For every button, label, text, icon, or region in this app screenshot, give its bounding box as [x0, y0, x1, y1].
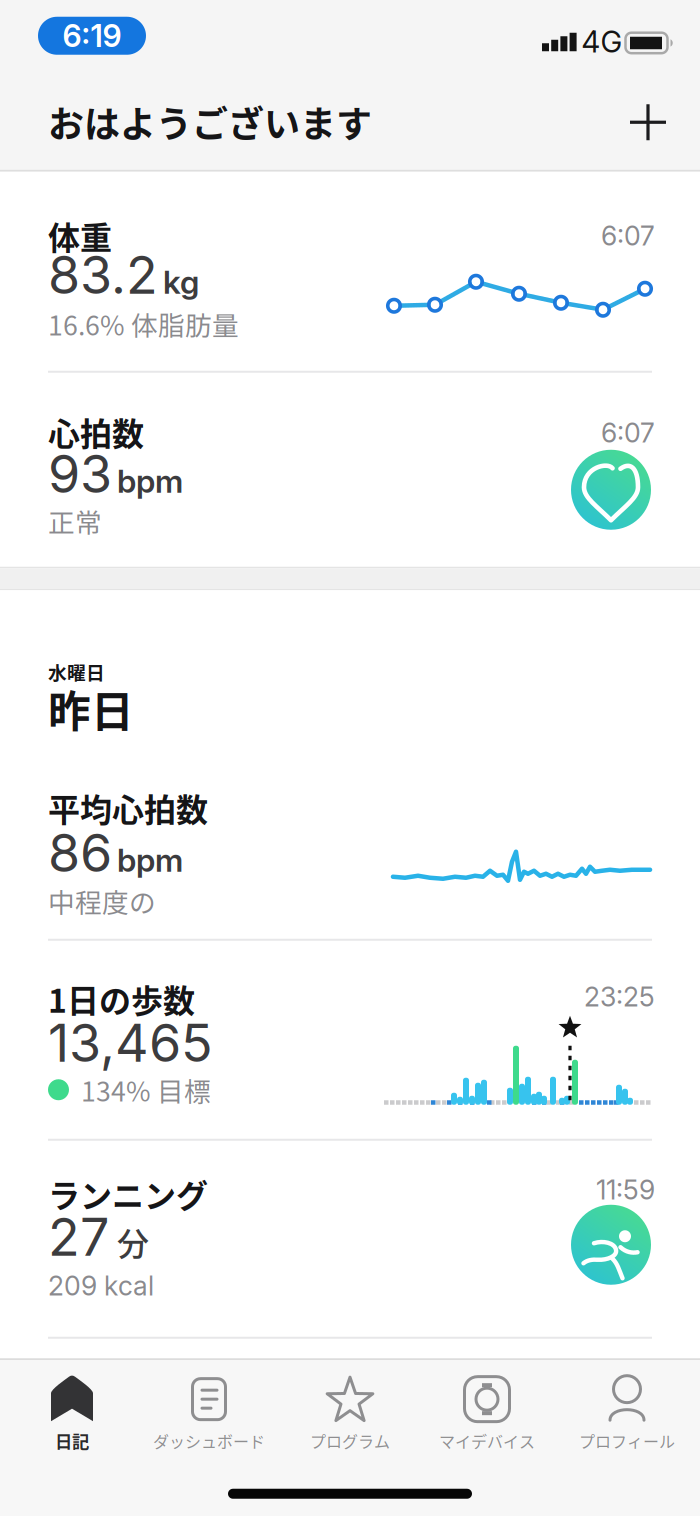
button[interactable]: ダッシュボード [140, 1363, 278, 1463]
staticText: 体重 [48, 213, 112, 259]
staticText: 86 [48, 821, 112, 884]
staticText: プログラム [310, 1429, 390, 1452]
staticText: 6:07 [601, 417, 655, 449]
staticText: 分 [117, 1218, 149, 1265]
button[interactable]: マイデバイス [418, 1363, 556, 1463]
button[interactable]: ランニング [0, 1140, 700, 1338]
staticText: 11:59 [596, 1174, 655, 1206]
button[interactable]: 体重 [0, 172, 700, 371]
staticText: 27 [48, 1205, 109, 1268]
button[interactable]: プロフィール [558, 1363, 696, 1463]
staticText: 6:07 [601, 220, 655, 252]
staticText: 23:25 [584, 981, 655, 1013]
staticText: 16.6% 体脂肪量 [48, 304, 239, 343]
staticText: ダッシュボード [153, 1429, 265, 1452]
staticText: kg [163, 263, 199, 301]
button[interactable]: 日記 [3, 1363, 141, 1463]
button[interactable]: 心拍数 [0, 372, 700, 567]
button[interactable]: Add [0, 0, 700, 1516]
staticText: 日記 [55, 1428, 89, 1453]
staticText: 4G [581, 24, 622, 59]
staticText: 正常 [48, 501, 102, 540]
staticText: 83.2 [48, 243, 158, 306]
staticText: 平均心拍数 [48, 785, 208, 831]
staticText: 6:19 [62, 17, 121, 54]
staticText: プロフィール [579, 1429, 675, 1452]
button[interactable]: 平均心拍数 [0, 770, 700, 940]
staticText: 209 kcal [48, 1270, 154, 1302]
staticText: 昨日 [48, 678, 134, 740]
staticText: 1日の歩数 [48, 976, 195, 1022]
staticText: ランニング [48, 1171, 208, 1217]
staticText: 水曜日 [48, 658, 105, 685]
staticText: マイデバイス [439, 1429, 535, 1452]
staticText: 134% 目標 [81, 1070, 211, 1109]
staticText: bpm [117, 462, 183, 500]
staticText: bpm [117, 841, 183, 879]
staticText: 93 [48, 442, 112, 505]
staticText: 心拍数 [48, 409, 144, 455]
staticText: おはようございます [48, 96, 372, 148]
staticText: 中程度の [48, 881, 156, 920]
button[interactable]: 1日の歩数 [0, 940, 700, 1140]
button[interactable]: プログラム [281, 1363, 419, 1463]
staticText: 13,465 [48, 1011, 213, 1074]
